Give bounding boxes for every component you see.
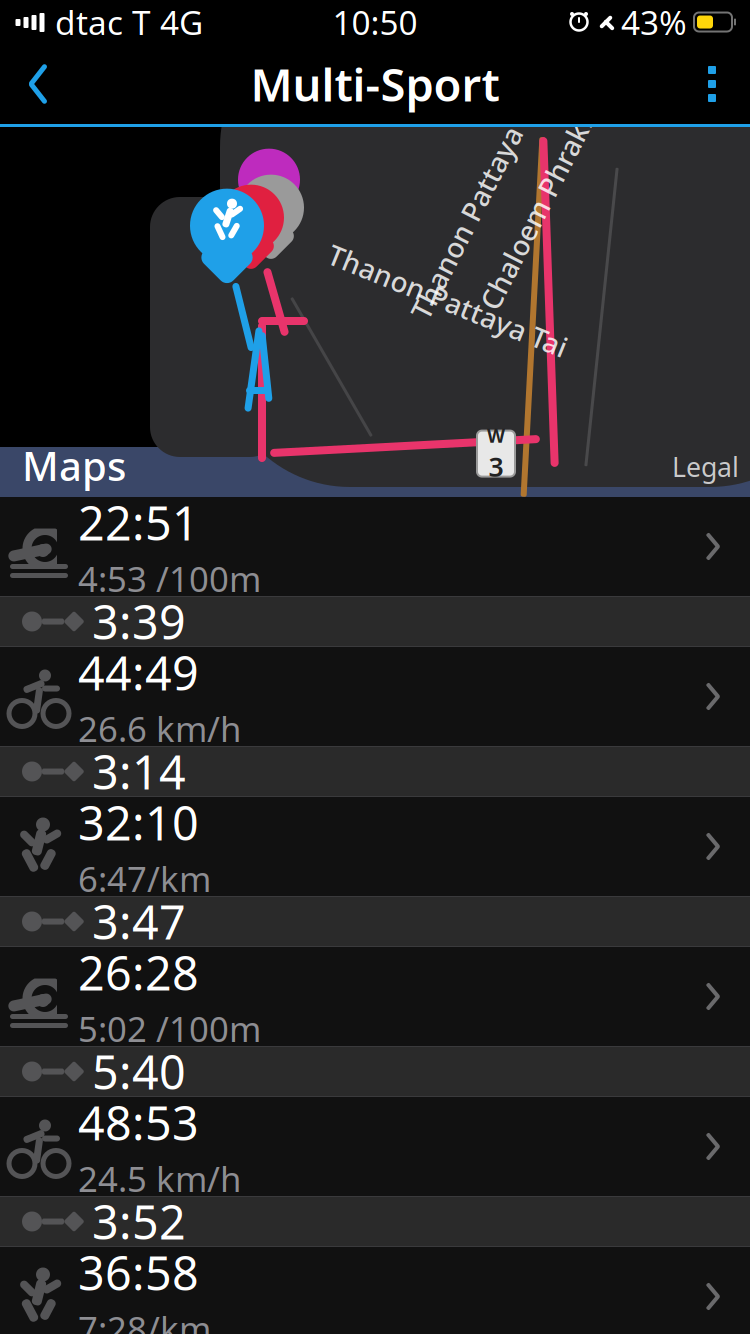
staticText: 7:28/km <box>78 1305 211 1334</box>
staticText: 26:28 <box>78 941 199 1003</box>
staticText: 24.5 km/h <box>78 1155 241 1201</box>
staticText: 4:53 /100m <box>78 555 261 601</box>
staticText: 44:49 <box>78 641 199 703</box>
staticText: 3:14 <box>92 740 186 802</box>
staticText: 10:50 <box>332 0 417 44</box>
button[interactable]: 36:58 <box>0 1247 750 1334</box>
staticText: Multi-Sport <box>250 54 499 114</box>
staticText: 6:47/km <box>78 855 211 901</box>
staticText: 36:58 <box>78 1241 199 1303</box>
staticText: 43% <box>621 0 687 44</box>
staticText: 5:02 /100m <box>78 1005 261 1051</box>
staticText: 3 <box>488 449 503 484</box>
staticText: Thanon Pattaya Sa <box>350 187 600 224</box>
staticText: Thanon Pattaya Tai <box>320 282 576 319</box>
staticText: 48:53 <box>78 1091 199 1153</box>
button[interactable]: 44:49 <box>0 647 750 747</box>
staticText: 26.6 km/h <box>78 705 241 751</box>
staticText: 5:40 <box>92 1040 186 1102</box>
button[interactable]: More options <box>682 52 742 116</box>
button[interactable]: 32:10 <box>0 797 750 897</box>
staticText: 32:10 <box>78 791 199 853</box>
staticText: Chaloem Phrakia <box>425 187 654 224</box>
staticText: 3:52 <box>92 1190 186 1252</box>
button[interactable]: 48:53 <box>0 1097 750 1197</box>
staticText: 3:47 <box>92 890 186 952</box>
staticText: dtac T 4G <box>46 0 203 44</box>
staticText: W <box>487 423 505 448</box>
staticText: 22:51 <box>78 491 199 553</box>
button[interactable]: Back <box>8 52 68 116</box>
staticText: Maps <box>22 439 126 492</box>
button[interactable]: 22:51 <box>0 497 750 597</box>
button[interactable]: 26:28 <box>0 947 750 1047</box>
staticText: Legal <box>672 449 739 484</box>
staticText: 3:39 <box>92 590 186 652</box>
